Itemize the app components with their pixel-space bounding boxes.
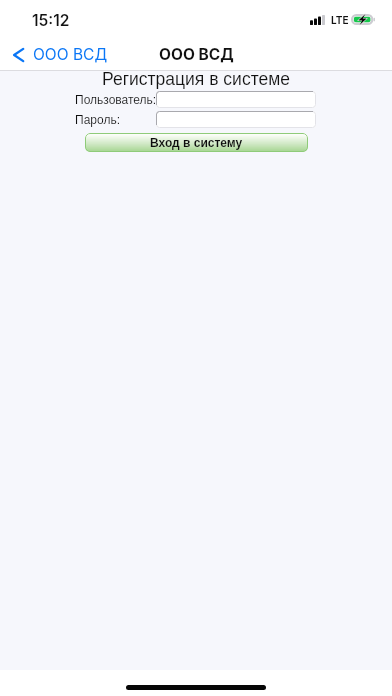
staticText: ООО ВСД xyxy=(33,45,108,64)
staticText: Регистрация в системе xyxy=(0,69,392,89)
staticText: Пользователь: xyxy=(75,93,157,106)
staticText: LTE xyxy=(331,14,349,26)
staticText: 15:12 xyxy=(32,11,70,30)
staticText: ООО ВСД xyxy=(159,45,234,64)
staticText: Пароль: xyxy=(75,113,120,126)
button[interactable]: Назад, ООО ВСД xyxy=(0,39,120,68)
button[interactable]: Вход в систему xyxy=(85,133,308,152)
button[interactable]: Пользователь xyxy=(156,91,316,108)
staticText: Вход в систему xyxy=(150,136,243,149)
button[interactable]: Пароль xyxy=(156,111,316,128)
